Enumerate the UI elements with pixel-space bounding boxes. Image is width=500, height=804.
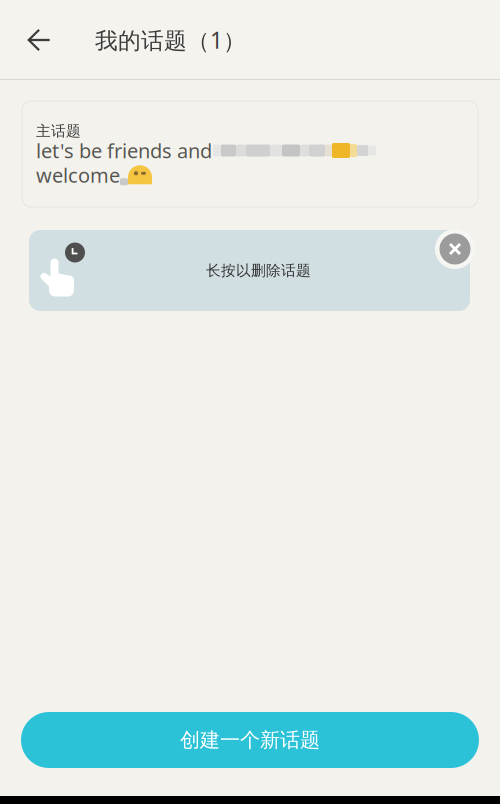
staticText: 主话题 [36, 122, 81, 140]
button[interactable]: Dismiss tip [435, 229, 475, 269]
button[interactable]: 创建一个新话题 [21, 712, 479, 768]
button[interactable]: 长按以删除话题 [29, 230, 470, 311]
staticText: welcome [36, 162, 120, 188]
staticText: 我的话题（1） [95, 25, 246, 55]
button[interactable]: 主话题 [22, 101, 478, 207]
button[interactable]: Back [16, 17, 62, 63]
staticText: 长按以删除话题 [206, 261, 311, 279]
staticText: let's be friends and [36, 137, 212, 164]
staticText: 创建一个新话题 [180, 728, 320, 752]
